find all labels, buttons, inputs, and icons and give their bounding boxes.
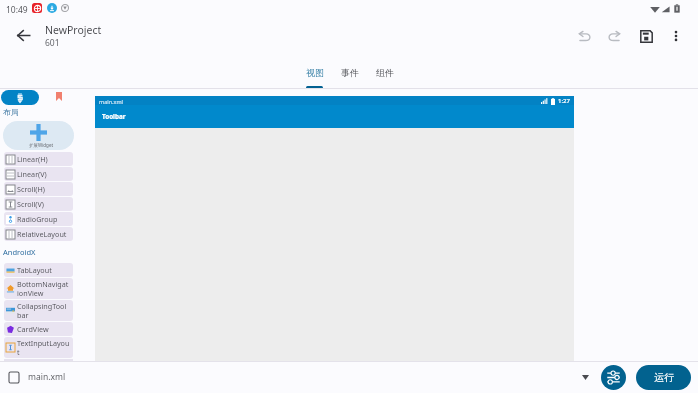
button[interactable]: Back (10, 22, 37, 49)
button[interactable]: Undo (571, 23, 597, 49)
staticText: 10:49 (6, 4, 28, 16)
staticText: main.xml (99, 98, 123, 105)
button[interactable]: 运行 (636, 365, 691, 390)
button[interactable]: Scroll(V) (4, 197, 73, 211)
button[interactable]: TextInputLayou t (4, 337, 73, 358)
staticText: 事件 (341, 67, 359, 78)
button[interactable]: Save (633, 23, 659, 49)
button[interactable]: Settings (601, 365, 626, 390)
button[interactable]: 扩展Widget (3, 121, 74, 150)
staticText: Scroll(H) (17, 184, 45, 194)
button[interactable]: Linear(V) (4, 167, 73, 181)
staticText: AndroidX (3, 247, 36, 257)
button[interactable]: RelativeLayout (4, 227, 73, 241)
button[interactable]: RadioGroup (4, 212, 73, 226)
button[interactable]: BottomNavigat ionView (4, 278, 73, 299)
staticText: 运行 (654, 371, 674, 384)
staticText: Linear(H) (17, 154, 48, 164)
staticText: 601 (45, 37, 60, 49)
button[interactable]: Layout tab (1, 90, 39, 105)
button[interactable]: Redo (601, 23, 627, 49)
button[interactable]: CollapsingTool bar (4, 300, 73, 321)
button[interactable]: Bookmark (56, 92, 62, 101)
button[interactable]: Dropdown (582, 375, 589, 380)
staticText: Linear(V) (17, 169, 47, 179)
staticText: CardView (17, 324, 49, 334)
button[interactable]: Linear(H) (4, 152, 73, 166)
button[interactable]: 组件 (367, 57, 402, 89)
staticText: Toolbar (102, 112, 126, 121)
staticText: TabLayout (17, 265, 52, 275)
staticText: 1:27 (558, 97, 570, 105)
staticText: Scroll(V) (17, 199, 44, 209)
staticText: 组件 (376, 67, 394, 78)
staticText: 视图 (306, 67, 324, 78)
button[interactable]: 视图 (297, 57, 332, 89)
staticText: 布局 (3, 107, 19, 117)
staticText: RadioGroup (17, 214, 58, 224)
button[interactable]: 事件 (332, 57, 367, 89)
staticText: NewProject (45, 23, 102, 37)
staticText: BottomNavigat ionView (17, 279, 69, 298)
staticText: 扩展Widget (29, 142, 54, 148)
staticText: RelativeLayout (17, 229, 67, 239)
staticText: CollapsingTool bar (17, 301, 67, 320)
staticText: main.xml (28, 371, 66, 383)
staticText: TextInputLayou t (17, 338, 70, 357)
button[interactable]: TabLayout (4, 263, 73, 277)
button[interactable]: CardView (4, 322, 73, 336)
button[interactable]: More options (663, 23, 689, 49)
button[interactable]: Scroll(H) (4, 182, 73, 196)
